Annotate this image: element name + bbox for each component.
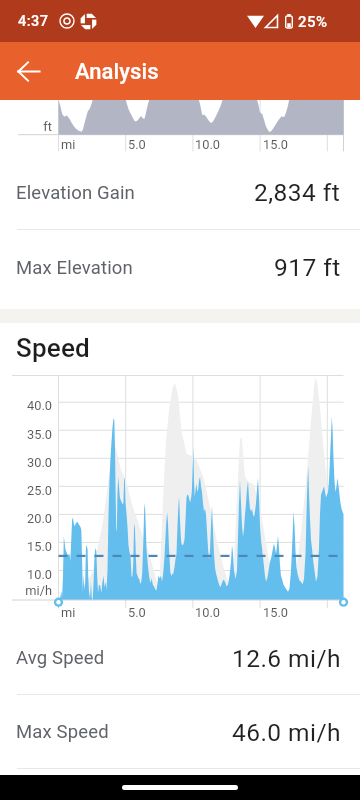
staticText: mi/h bbox=[0, 583, 52, 598]
staticText: 40.0 bbox=[0, 398, 52, 413]
staticText: 20.0 bbox=[0, 511, 52, 526]
staticText: 10.0 bbox=[0, 567, 52, 582]
button[interactable]: Elevation Gain bbox=[0, 155, 360, 230]
staticText: 5.0 bbox=[128, 137, 146, 152]
staticText: 35.0 bbox=[0, 427, 52, 442]
button[interactable]: Max Speed bbox=[0, 695, 360, 769]
staticText: Elevation Gain bbox=[16, 182, 135, 204]
button[interactable]: Max Elevation bbox=[0, 230, 360, 305]
staticText: Speed bbox=[16, 333, 90, 363]
staticText: 15.0 bbox=[263, 137, 288, 152]
staticText: mi bbox=[61, 137, 76, 152]
staticText: Analysis bbox=[75, 59, 159, 85]
staticText: mi bbox=[61, 605, 76, 620]
staticText: 917 ft bbox=[274, 253, 341, 282]
staticText: 10.0 bbox=[195, 605, 220, 620]
staticText: 15.0 bbox=[263, 605, 288, 620]
staticText: 25% bbox=[298, 13, 328, 31]
staticText: 2,834 ft bbox=[254, 178, 341, 207]
button[interactable]: Avg Speed bbox=[0, 621, 360, 695]
staticText: 5.0 bbox=[128, 605, 146, 620]
staticText: Avg Speed bbox=[16, 647, 105, 669]
staticText: Max Speed bbox=[16, 721, 109, 743]
staticText: ft bbox=[0, 119, 52, 134]
staticText: Max Elevation bbox=[16, 257, 133, 279]
button[interactable]: Back bbox=[5, 48, 51, 94]
staticText: 15.0 bbox=[0, 539, 52, 554]
staticText: 46.0 mi/h bbox=[232, 718, 341, 747]
staticText: 25.0 bbox=[0, 483, 52, 498]
staticText: 4:37 bbox=[18, 13, 49, 30]
staticText: 12.6 mi/h bbox=[232, 644, 341, 673]
staticText: 30.0 bbox=[0, 455, 52, 470]
staticText: 10.0 bbox=[195, 137, 220, 152]
